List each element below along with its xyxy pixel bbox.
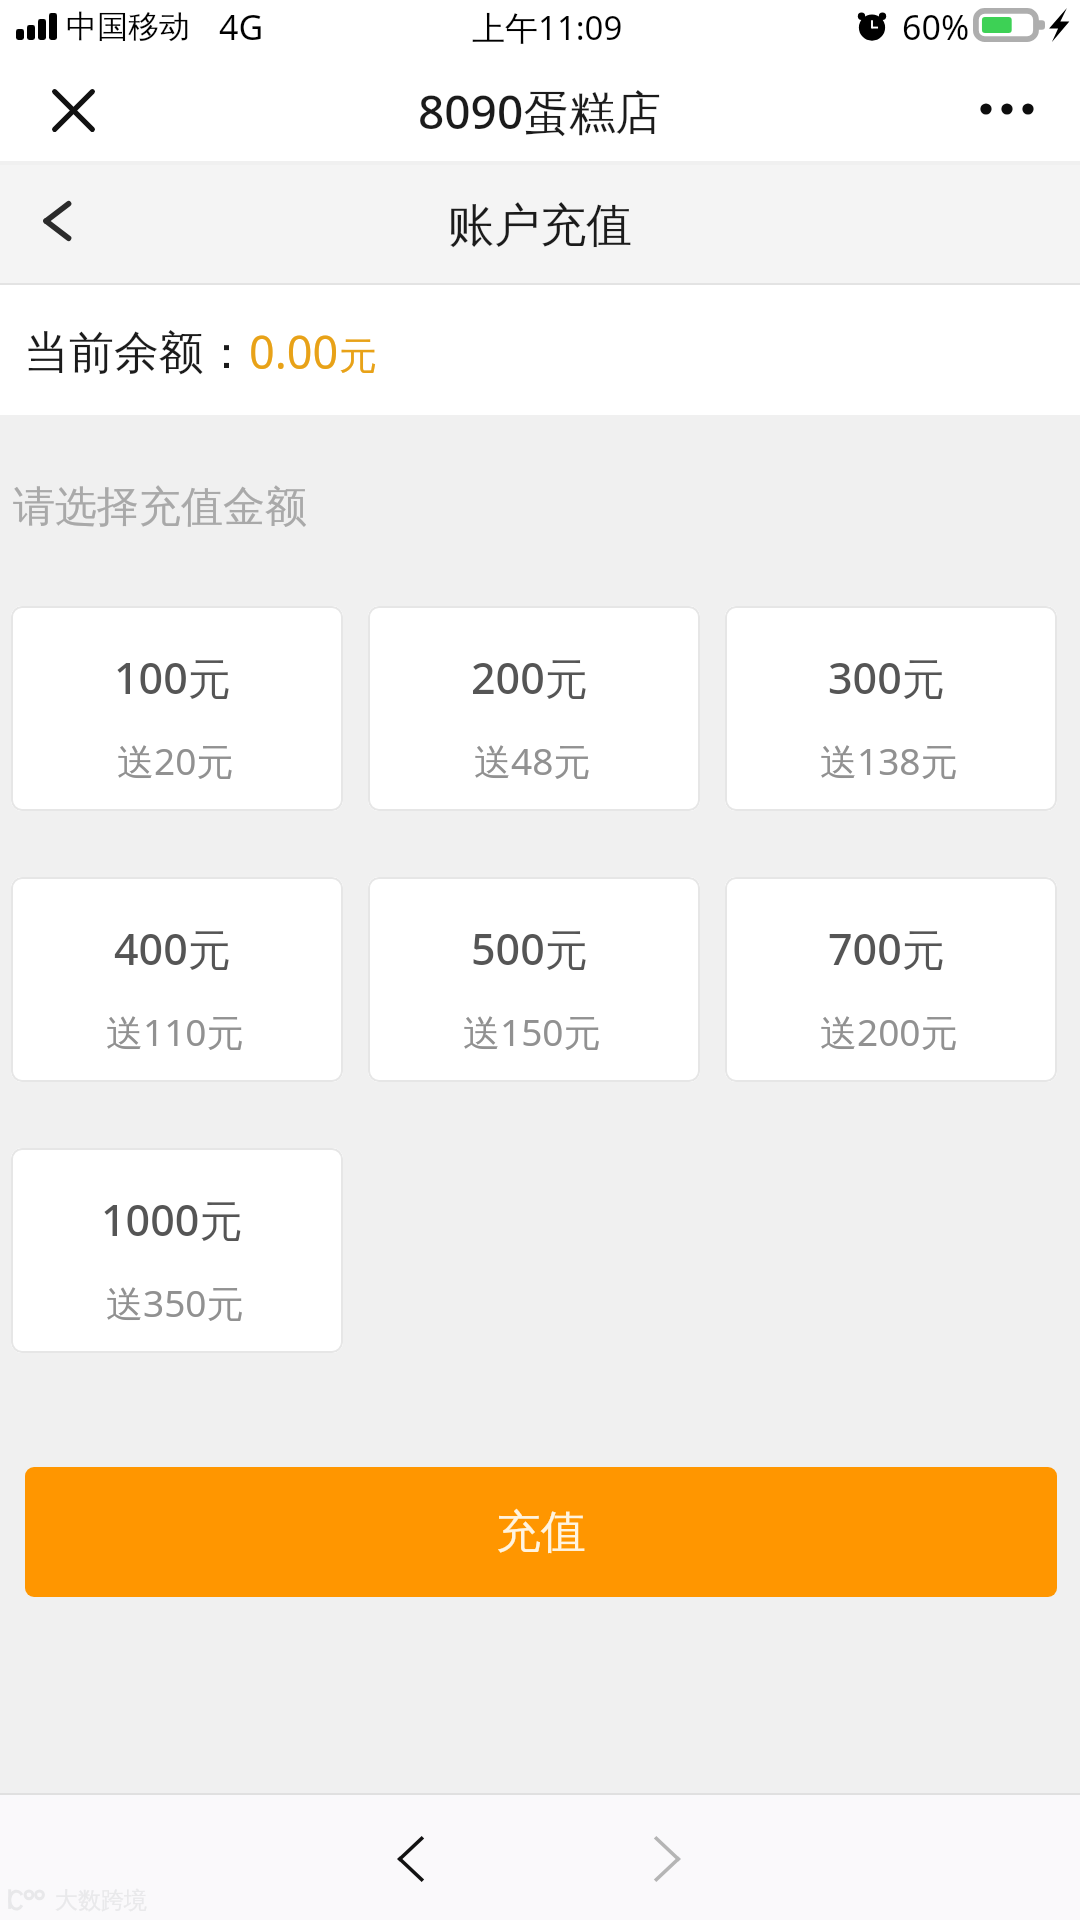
staticText: 400元 xyxy=(114,919,231,978)
staticText: 200元 xyxy=(471,648,588,707)
staticText: 700元 xyxy=(828,919,945,978)
staticText: 100元 xyxy=(114,648,231,707)
button[interactable]: Back xyxy=(35,197,83,245)
button[interactable]: 500元 xyxy=(368,877,700,1082)
staticText: 500元 xyxy=(471,919,588,978)
staticText: 1000元 xyxy=(101,1190,243,1249)
staticText: 送138元 xyxy=(820,735,958,786)
staticText: 大数跨境 xyxy=(55,1886,147,1915)
button[interactable]: 200元 xyxy=(368,606,700,811)
button[interactable]: Forward xyxy=(632,1826,698,1892)
staticText: 送150元 xyxy=(463,1006,601,1057)
staticText: 4G xyxy=(219,4,264,50)
button[interactable]: 700元 xyxy=(725,877,1057,1082)
staticText: 送200元 xyxy=(820,1006,958,1057)
button[interactable]: 400元 xyxy=(11,877,343,1082)
staticText: 充值 xyxy=(496,1504,586,1561)
staticText: 300元 xyxy=(828,648,945,707)
button[interactable]: 充值 xyxy=(25,1467,1057,1597)
staticText: 60% xyxy=(902,4,970,50)
staticText: 送110元 xyxy=(106,1006,244,1057)
button[interactable]: 300元 xyxy=(725,606,1057,811)
staticText: 请选择充值金额 xyxy=(13,481,307,534)
staticText: 送350元 xyxy=(106,1277,244,1328)
button[interactable]: More options xyxy=(970,86,1044,132)
staticText: 8090蛋糕店 xyxy=(418,80,662,143)
staticText: 账户充值 xyxy=(448,197,632,255)
staticText: 上午11:09 xyxy=(472,5,623,50)
button[interactable]: 100元 xyxy=(11,606,343,811)
staticText: 当前余额： xyxy=(24,325,249,382)
staticText: 0.00 xyxy=(249,321,339,382)
button[interactable]: Close xyxy=(49,86,98,135)
staticText: 送20元 xyxy=(117,735,234,786)
staticText: 中国移动 xyxy=(66,7,190,46)
staticText: 元 xyxy=(339,332,377,380)
button[interactable]: 1000元 xyxy=(11,1148,343,1353)
staticText: 送48元 xyxy=(474,735,591,786)
button[interactable]: Back xyxy=(380,1826,446,1892)
